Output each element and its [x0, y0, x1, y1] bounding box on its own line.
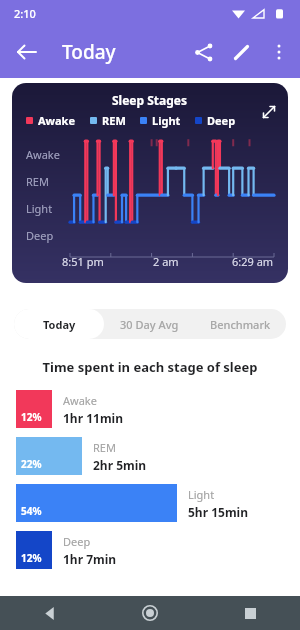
staticText: Sleep Stages — [112, 92, 188, 108]
staticText: Time spent in each stage of sleep — [0, 358, 300, 376]
staticText: REM — [26, 174, 49, 189]
staticText: Awake — [38, 113, 76, 128]
button[interactable]: 30 Day Avg — [104, 309, 195, 339]
button[interactable]: Today — [14, 309, 104, 339]
staticText: Light — [188, 487, 215, 502]
button[interactable]: Back — [6, 32, 46, 72]
staticText: Awake — [63, 393, 97, 408]
staticText: 2 am — [153, 254, 179, 269]
staticText: 30 Day Avg — [120, 317, 179, 332]
staticText: Deep — [26, 228, 54, 243]
button[interactable]: 12% — [0, 390, 300, 428]
staticText: 2:10 — [14, 6, 36, 21]
staticText: REM — [93, 440, 116, 455]
button[interactable]: Recent apps — [200, 596, 300, 630]
staticText: Deep — [207, 113, 236, 128]
staticText: 22% — [21, 457, 42, 471]
button[interactable]: Back — [0, 596, 100, 630]
staticText: 12% — [21, 551, 42, 565]
button[interactable]: 54% — [0, 484, 300, 522]
staticText: 8:51 pm — [62, 254, 104, 269]
staticText: 54% — [21, 504, 42, 518]
staticText: Awake — [26, 147, 60, 162]
button[interactable]: More options — [260, 33, 298, 71]
staticText: REM — [102, 113, 126, 128]
staticText: Benchmark — [210, 317, 271, 332]
button[interactable]: 22% — [0, 437, 300, 475]
staticText: 1hr 7min — [63, 551, 117, 567]
staticText: Today — [62, 39, 116, 65]
staticText: Deep — [63, 534, 91, 549]
staticText: 12% — [21, 410, 42, 424]
button[interactable]: Edit — [222, 33, 260, 71]
button[interactable]: Sleep Stages — [12, 83, 288, 283]
staticText: 5hr 15min — [188, 504, 248, 520]
button[interactable]: Home — [100, 596, 200, 630]
button[interactable]: Benchmark — [195, 309, 286, 339]
staticText: 6:29 am — [232, 254, 274, 269]
staticText: Today — [43, 317, 76, 332]
button[interactable]: Expand chart — [256, 99, 282, 125]
button[interactable]: Share — [184, 33, 222, 71]
staticText: Light — [152, 113, 181, 128]
staticText: 1hr 11min — [63, 410, 123, 426]
staticText: Light — [26, 201, 53, 216]
staticText: 2hr 5min — [93, 457, 147, 473]
button[interactable]: 12% — [0, 531, 300, 569]
